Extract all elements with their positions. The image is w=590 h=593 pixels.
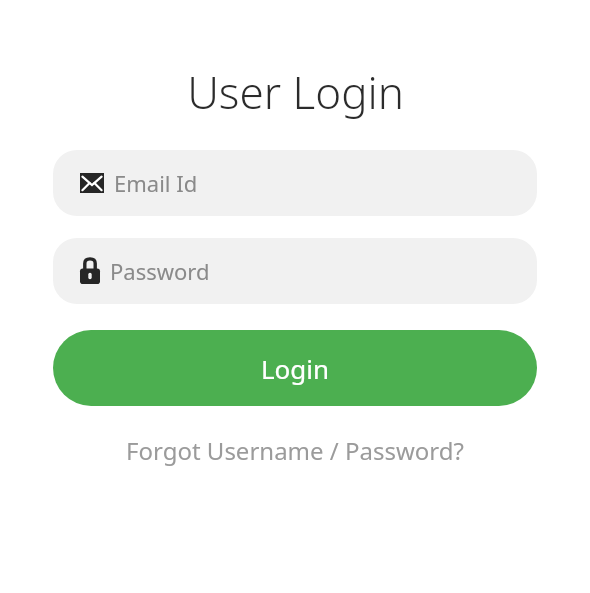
other: Email — [80, 173, 104, 193]
other: Password — [80, 258, 100, 284]
button[interactable]: Password — [53, 238, 537, 304]
staticText: Forgot Username / Password? — [126, 434, 464, 467]
staticText: Login — [261, 351, 330, 386]
button[interactable]: Forgot Username / Password? — [118, 430, 472, 471]
button[interactable]: Email — [53, 150, 537, 216]
button[interactable]: Login — [53, 330, 537, 406]
staticText: Email Id — [114, 168, 198, 198]
staticText: User Login — [187, 62, 404, 122]
staticText: Password — [110, 256, 210, 286]
